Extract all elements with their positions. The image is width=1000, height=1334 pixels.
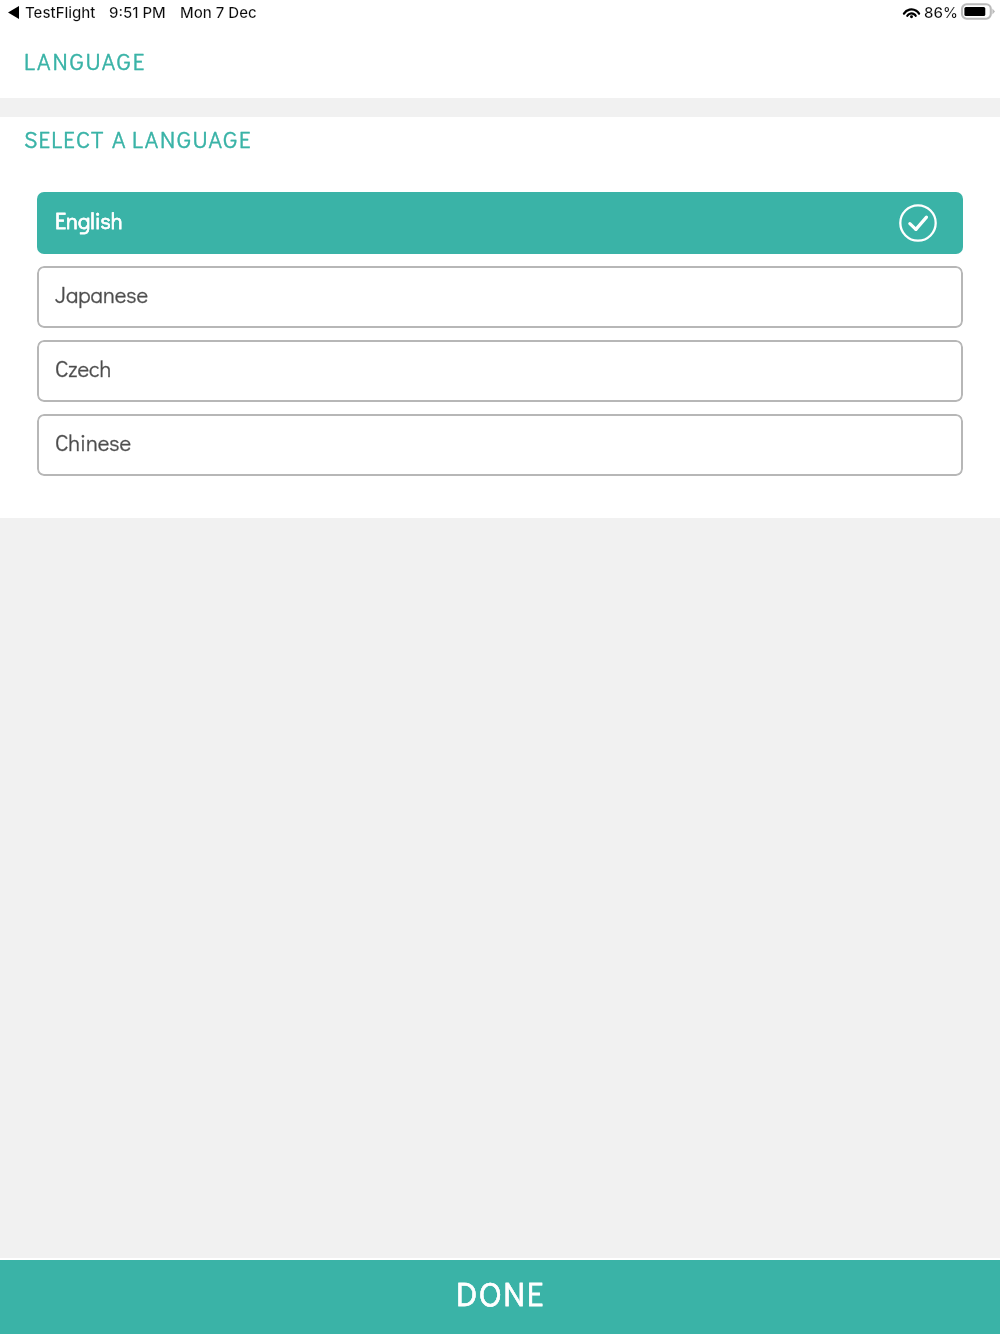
other: Battery 86 percent [962,4,995,19]
staticText: English [55,206,123,235]
staticText: Czech [55,354,112,383]
button[interactable]: Japanese [37,266,963,328]
button[interactable]: Czech [37,340,963,402]
staticText: English [55,206,123,235]
staticText: Czech [55,354,112,383]
button[interactable]: Chinese [37,414,963,476]
button[interactable]: DONE [0,1260,1000,1334]
staticText: SELECT [24,124,105,154]
staticText: 86% [924,3,958,21]
other: Wi-Fi [903,5,920,18]
other: Back to TestFlight [8,6,19,19]
staticText: 9:51 PM [109,3,166,21]
button[interactable]: English [37,192,963,254]
staticText: Chinese [55,428,132,457]
staticText: SELECT [24,124,105,154]
staticText: LANGUAGE [24,46,147,76]
other: Selected [899,204,937,242]
staticText: DONE [456,1271,545,1314]
staticText: LANGUAGE [24,46,147,76]
staticText: TestFlight [25,3,96,21]
staticText: LANGUAGE [132,124,253,154]
staticText: Mon 7 Dec [180,3,257,21]
staticText: A [112,124,127,154]
staticText: DONE [456,1271,545,1314]
staticText: Japanese [55,280,149,309]
staticText: Chinese [55,428,132,457]
staticText: A [112,124,127,154]
staticText: Japanese [55,280,149,309]
staticText: LANGUAGE [132,124,253,154]
